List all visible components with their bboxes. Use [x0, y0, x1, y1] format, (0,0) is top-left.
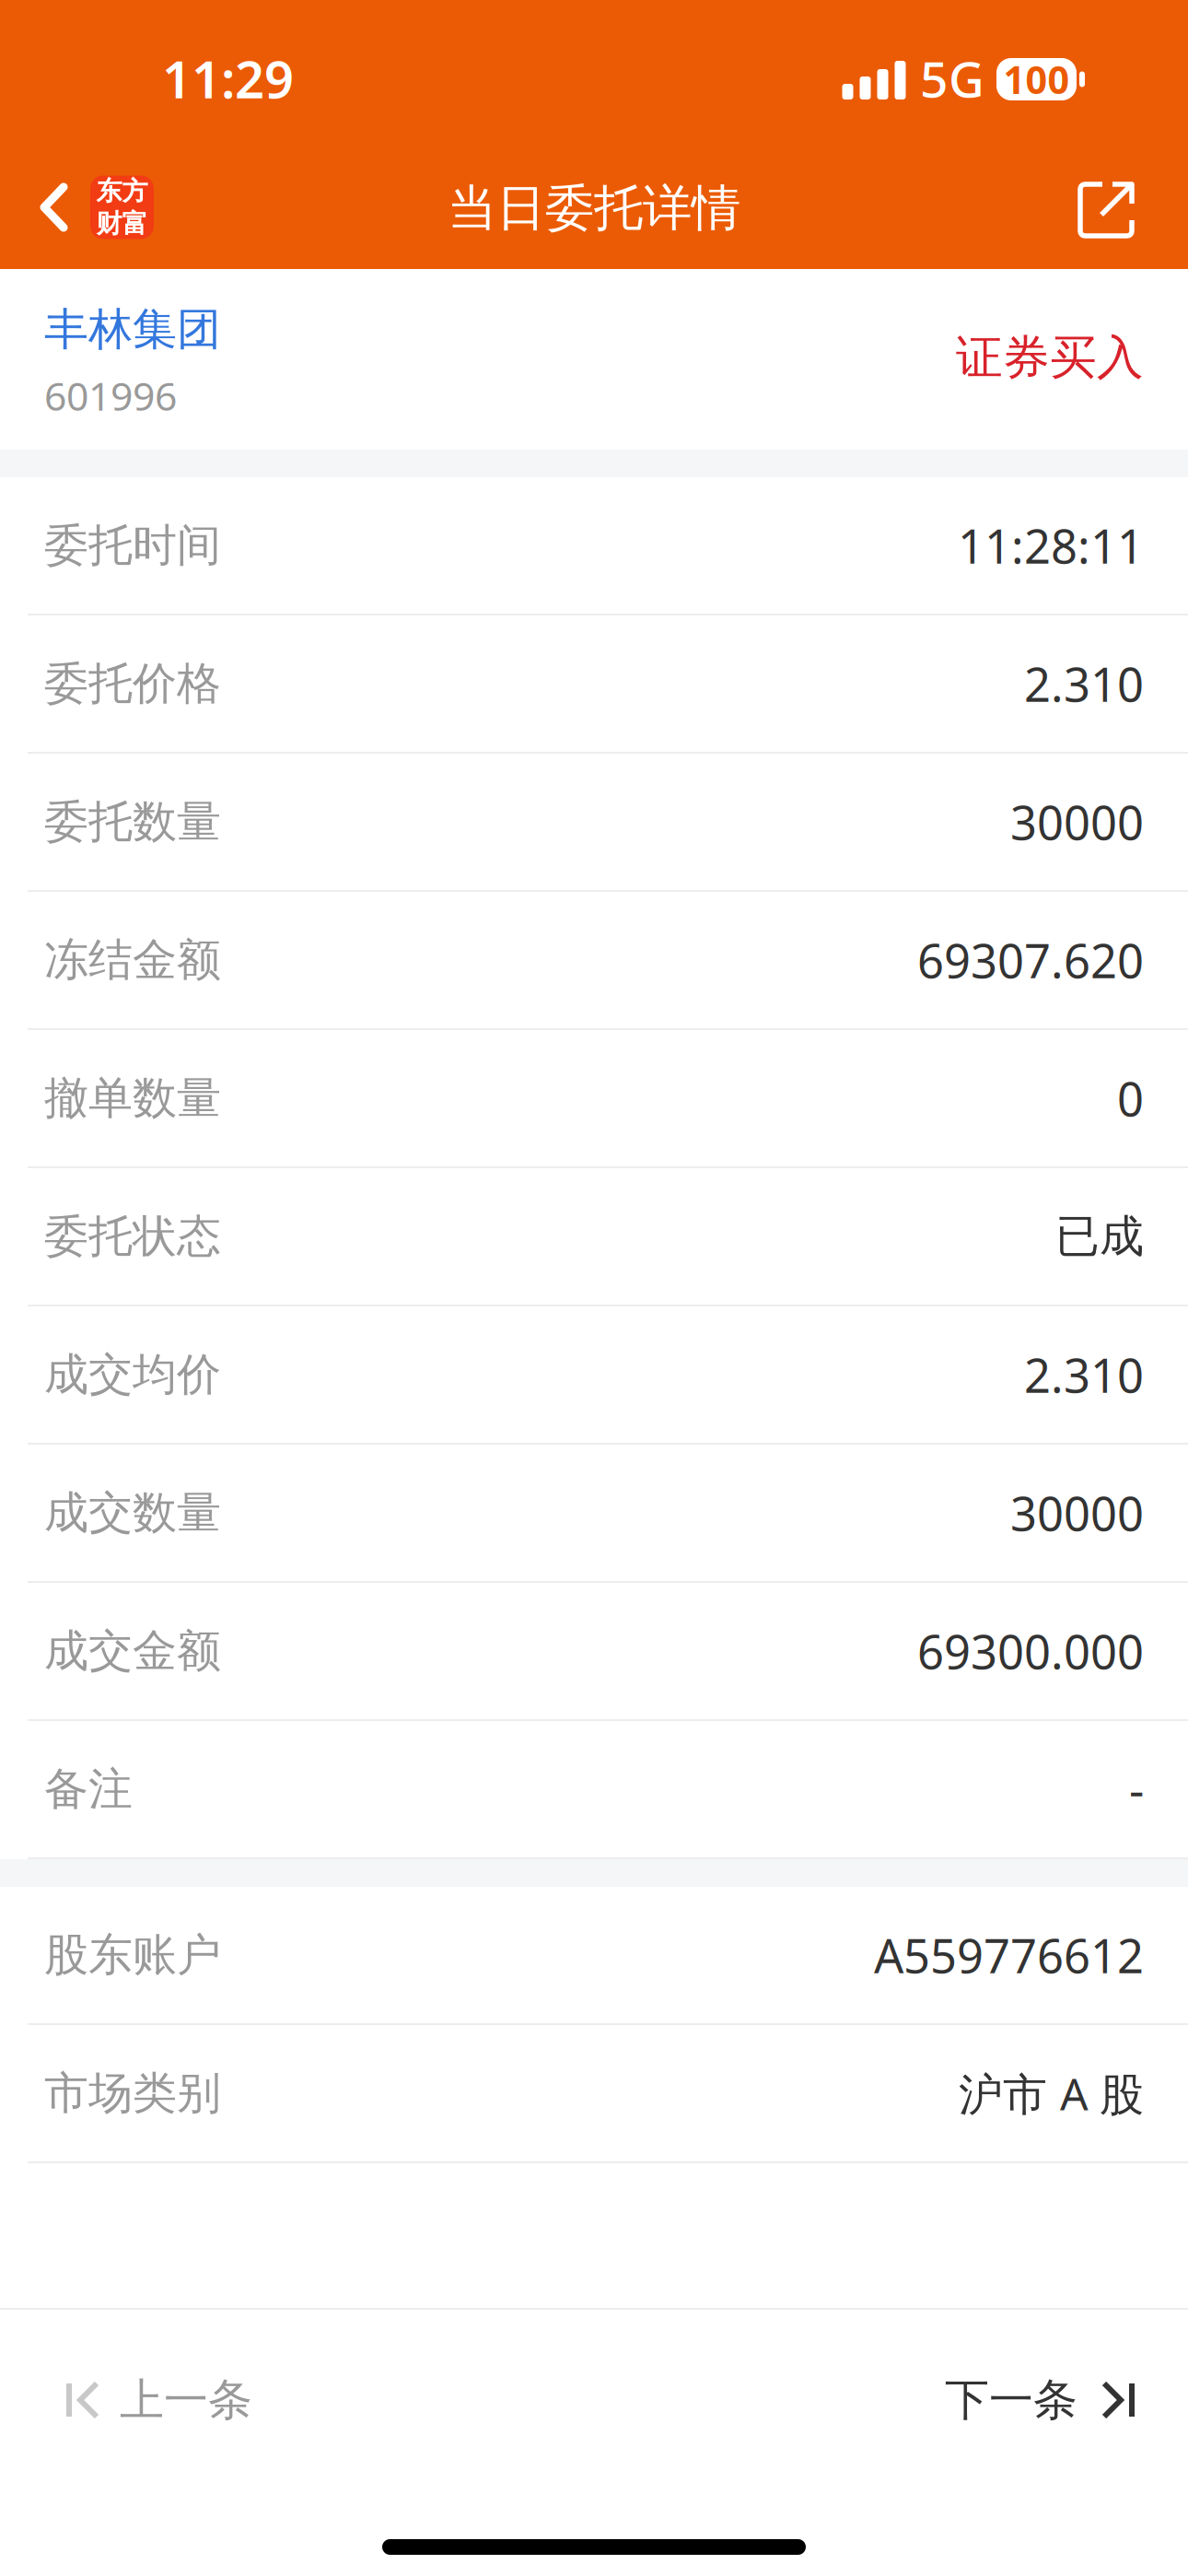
staticText: 30000 — [1010, 791, 1144, 853]
staticText: 100 — [1003, 54, 1070, 105]
staticText: 5G — [920, 46, 984, 111]
staticText: 委托状态 — [44, 1209, 221, 1264]
button[interactable]: 返回 — [0, 152, 172, 253]
staticText: 下一条 — [945, 2373, 1077, 2427]
staticText: 69307.620 — [917, 929, 1144, 991]
staticText: 沪市 A 股 — [959, 2064, 1144, 2123]
staticText: 撤单数量 — [44, 1071, 221, 1125]
staticText: 市场类别 — [44, 2066, 221, 2120]
button[interactable]: 上一条 — [0, 2340, 289, 2460]
staticText: 已成 — [1055, 1209, 1144, 1264]
staticText: 东 — [96, 175, 122, 207]
button[interactable]: 下一条 — [908, 2340, 1188, 2460]
staticText: 2.310 — [1024, 1344, 1144, 1406]
staticText: 财 — [96, 208, 122, 239]
staticText: 丰林集团 — [44, 302, 221, 357]
staticText: 富 — [122, 208, 148, 239]
staticText: 2.310 — [1024, 653, 1144, 715]
button[interactable]: 分享 — [1058, 152, 1188, 253]
staticText: 委托时间 — [44, 518, 221, 573]
staticText: 成交金额 — [44, 1624, 221, 1678]
staticText: 当日委托详情 — [448, 178, 740, 238]
staticText: 证券买入 — [956, 329, 1144, 386]
staticText: 11:28:11 — [958, 514, 1144, 576]
staticText: 方 — [122, 175, 148, 207]
staticText: 股东账户 — [44, 1928, 221, 1982]
staticText: 委托数量 — [44, 795, 221, 849]
staticText: 上一条 — [120, 2373, 252, 2427]
staticText: 成交数量 — [44, 1486, 221, 1540]
staticText: 委托价格 — [44, 656, 221, 711]
staticText: 30000 — [1010, 1482, 1144, 1544]
staticText: 0 — [1117, 1067, 1144, 1129]
staticText: 601996 — [44, 369, 177, 422]
staticText: 69300.000 — [917, 1620, 1144, 1682]
staticText: 成交均价 — [44, 1347, 221, 1402]
staticText: 冻结金额 — [44, 933, 221, 987]
staticText: - — [1129, 1758, 1144, 1820]
staticText: 11:29 — [162, 44, 294, 113]
staticText: A559776612 — [874, 1924, 1144, 1986]
staticText: 备注 — [44, 1762, 133, 1816]
